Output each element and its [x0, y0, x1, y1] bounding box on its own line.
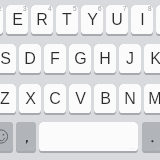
- button[interactable]: I: [131, 5, 153, 36]
- staticText: Z: [0, 90, 10, 108]
- button[interactable]: Comma: [16, 122, 36, 153]
- staticText: I: [140, 11, 145, 29]
- staticText: 4: [48, 5, 52, 12]
- staticText: B: [100, 90, 111, 108]
- button[interactable]: O: [156, 5, 160, 36]
- button[interactable]: B: [94, 84, 116, 115]
- button[interactable]: D: [19, 44, 41, 75]
- staticText: J: [126, 50, 134, 68]
- button[interactable]: Period: [142, 122, 160, 153]
- staticText: T: [62, 11, 72, 29]
- button[interactable]: Y: [81, 5, 103, 36]
- button[interactable]: R: [31, 5, 53, 36]
- button[interactable]: K: [144, 44, 160, 75]
- staticText: 3: [23, 5, 27, 12]
- staticText: E: [12, 11, 23, 29]
- button[interactable]: H: [94, 44, 116, 75]
- button[interactable]: V: [69, 84, 91, 115]
- button[interactable]: G: [69, 44, 91, 75]
- button[interactable]: C: [44, 84, 66, 115]
- button[interactable]: Space: [39, 122, 138, 153]
- button[interactable]: S: [0, 44, 16, 75]
- staticText: Y: [87, 11, 98, 29]
- staticText: D: [24, 50, 36, 68]
- staticText: 7: [123, 5, 127, 12]
- button[interactable]: Z: [0, 84, 16, 115]
- button[interactable]: M: [144, 84, 160, 115]
- button[interactable]: N: [119, 84, 141, 115]
- staticText: C: [49, 90, 61, 108]
- button[interactable]: F: [44, 44, 66, 75]
- button[interactable]: W: [0, 5, 3, 36]
- staticText: U: [111, 11, 123, 29]
- staticText: 5: [73, 5, 77, 12]
- staticText: K: [150, 50, 160, 68]
- button[interactable]: T: [56, 5, 78, 36]
- staticText: S: [0, 50, 11, 68]
- button[interactable]: E: [6, 5, 28, 36]
- staticText: R: [36, 11, 48, 29]
- button[interactable]: X: [19, 84, 41, 115]
- button[interactable]: J: [119, 44, 141, 75]
- staticText: N: [124, 90, 136, 108]
- button[interactable]: Emoji: [0, 122, 13, 153]
- staticText: H: [99, 50, 111, 68]
- staticText: 8: [148, 5, 152, 12]
- staticText: V: [75, 90, 86, 108]
- staticText: X: [25, 90, 36, 108]
- staticText: F: [50, 50, 60, 68]
- staticText: 2: [0, 5, 2, 12]
- staticText: 6: [98, 5, 102, 12]
- staticText: M: [148, 90, 160, 108]
- staticText: G: [74, 50, 87, 68]
- button[interactable]: U: [106, 5, 128, 36]
